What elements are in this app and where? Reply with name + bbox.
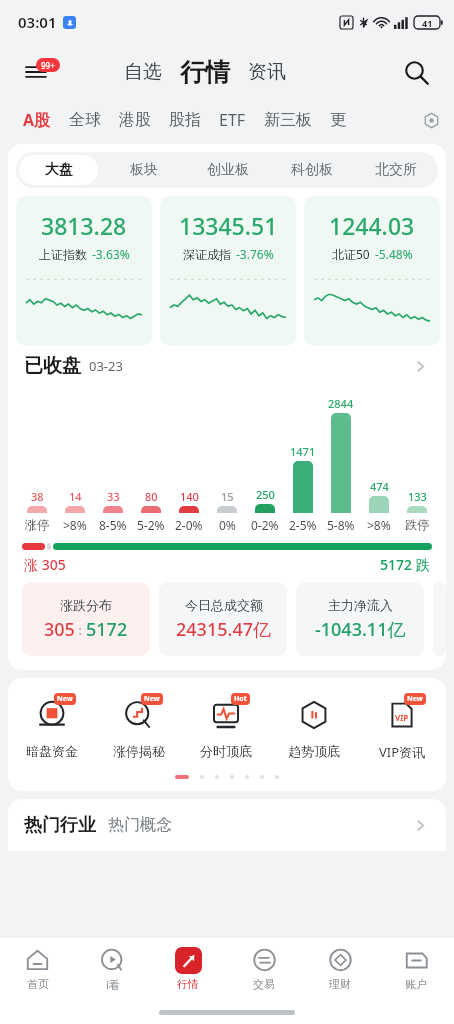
staticText: 今日总成交额 [185, 597, 263, 613]
staticText: 250 [256, 487, 275, 502]
staticText: 交易 [253, 977, 275, 991]
staticText: 1244.03 [329, 210, 415, 241]
staticText: -3.76% [236, 246, 274, 262]
button[interactable]: 涨跌分布 [22, 582, 150, 656]
button[interactable]: ETF [210, 103, 255, 137]
staticText: -5.48% [375, 246, 413, 262]
staticText: 8-5% [99, 517, 127, 533]
button[interactable]: 行情 [150, 938, 226, 1000]
staticText: New [407, 694, 423, 704]
staticText: 474 [370, 479, 389, 494]
button[interactable]: 账户 [378, 938, 454, 1000]
staticText: 热门概念 [108, 815, 172, 835]
staticText: 分时顶底 [200, 743, 252, 759]
staticText: 24315.47亿 [176, 617, 271, 642]
staticText: 港股 [119, 110, 151, 130]
staticText: 2-5% [289, 517, 317, 533]
button[interactable]: Search [396, 52, 436, 92]
button[interactable]: More [408, 354, 432, 378]
button[interactable]: 港股 [110, 104, 160, 136]
staticText: 5172 跌 [380, 555, 430, 574]
button[interactable]: 板块 [104, 155, 183, 185]
button[interactable]: VIP [358, 694, 446, 761]
staticText: 涨停 [25, 517, 49, 532]
staticText: 03:01 [18, 12, 57, 32]
staticText: 涨 305 [24, 555, 66, 574]
staticText: -1043.11亿 [315, 617, 406, 642]
staticText: ETF [219, 109, 246, 131]
staticText: >8% [63, 517, 87, 533]
staticText: 38 [31, 489, 44, 504]
button[interactable]: 今日总成交额 [159, 582, 287, 656]
staticText: New [144, 694, 160, 704]
staticText: Hot [234, 694, 247, 704]
button[interactable]: 大盘 [19, 155, 98, 185]
button[interactable]: Hot [182, 694, 270, 759]
button[interactable]: 1244.03 [304, 196, 440, 346]
staticText: 全球 [69, 110, 101, 130]
button[interactable]: 更 [321, 104, 355, 136]
staticText: 33 [107, 489, 120, 504]
button[interactable]: More categories [418, 107, 444, 133]
button[interactable]: 3813.28 [16, 196, 152, 346]
button[interactable]: 首页 [0, 938, 75, 1000]
button[interactable]: 资讯 [242, 56, 292, 88]
staticText: VIP [395, 712, 409, 723]
staticText: 跌停 [405, 517, 429, 532]
button[interactable]: 全球 [60, 104, 110, 136]
staticText: 账户 [405, 977, 427, 991]
button[interactable]: 热门概念 [108, 815, 172, 835]
staticText: 03-23 [89, 357, 123, 375]
staticText: 北交所 [375, 161, 417, 179]
staticText: 305 [44, 617, 75, 642]
button[interactable]: 交易 [226, 938, 302, 1000]
button[interactable]: New [95, 694, 182, 759]
staticText: 股指 [169, 110, 201, 130]
staticText: 行情 [177, 977, 199, 991]
button[interactable]: 趋势顶底 [270, 694, 358, 759]
staticText: 北证50 [332, 246, 370, 262]
staticText: 创业板 [207, 161, 249, 179]
button[interactable]: 创业板 [189, 155, 267, 185]
staticText: 2-0% [175, 517, 203, 533]
button[interactable]: 自选 [118, 56, 168, 88]
staticText: 5172 [86, 617, 128, 642]
button[interactable]: 股指 [160, 104, 210, 136]
staticText: A股 [23, 109, 51, 131]
staticText: 新三板 [264, 110, 312, 130]
staticText: 行情 [180, 57, 230, 88]
button[interactable]: 13345.51 [160, 196, 296, 346]
button[interactable]: 行情 [176, 57, 234, 88]
staticText: 主力净流入 [328, 597, 393, 613]
staticText: : [75, 621, 86, 639]
button[interactable]: New [8, 694, 95, 759]
button[interactable]: Menu [14, 50, 58, 94]
button[interactable]: 新三板 [255, 104, 321, 136]
button[interactable]: i看 [75, 938, 150, 1000]
staticText: 3813.28 [41, 210, 127, 241]
staticText: New [57, 694, 73, 704]
staticText: 热门行业 [24, 814, 96, 837]
staticText: 自选 [124, 60, 162, 84]
staticText: 科创板 [291, 161, 333, 179]
button[interactable]: More industries [408, 813, 432, 837]
staticText: 99+ [41, 60, 55, 71]
staticText: 上证指数 [39, 247, 87, 262]
button[interactable]: 主力净流入 [296, 582, 424, 656]
staticText: 更 [330, 110, 346, 130]
button[interactable]: 理财 [302, 938, 378, 1000]
staticText: 5-8% [327, 517, 355, 533]
staticText: 5-2% [137, 517, 165, 533]
staticText: 41 [422, 17, 433, 29]
button[interactable]: 北交所 [357, 155, 435, 185]
staticText: 0-2% [251, 517, 279, 533]
staticText: VIP资讯 [379, 743, 426, 761]
staticText: 首页 [27, 977, 49, 991]
staticText: 1471 [290, 444, 316, 459]
button[interactable]: 热门行业 [24, 814, 96, 837]
staticText: 深证成指 [183, 247, 231, 262]
staticText: 15 [221, 489, 234, 504]
button[interactable]: A股 [14, 103, 60, 137]
button[interactable]: 科创板 [273, 155, 351, 185]
